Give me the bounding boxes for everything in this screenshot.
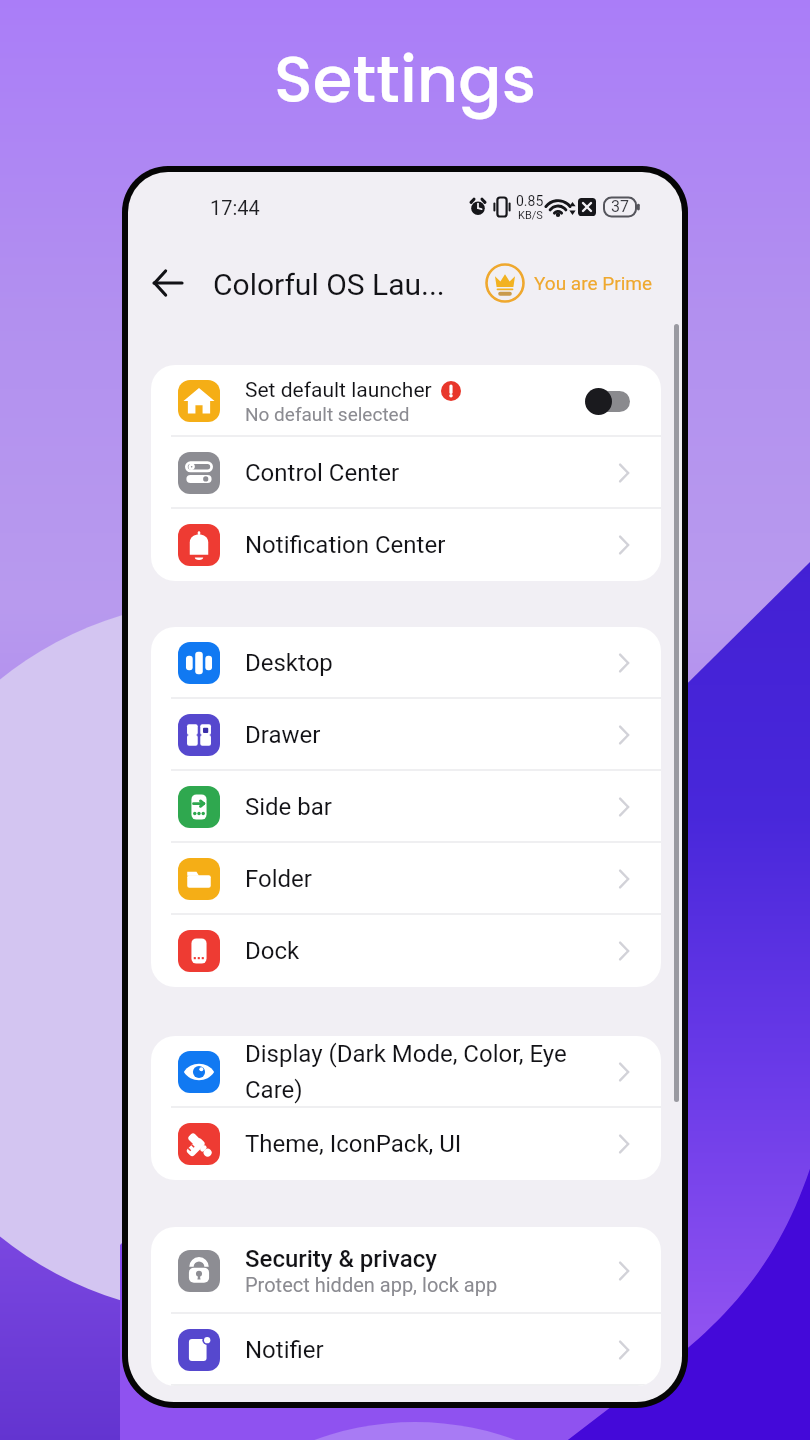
staticText: Folder	[245, 865, 312, 893]
button[interactable]: Back	[142, 257, 194, 309]
staticText: 37	[611, 197, 629, 216]
staticText: Set default launcher	[245, 378, 432, 403]
button[interactable]: Security & privacy	[151, 1227, 661, 1314]
staticText: Protect hidden app, lock app	[245, 1273, 498, 1296]
staticText: Drawer	[245, 721, 321, 749]
button[interactable]: Theme, IconPack, UI	[151, 1108, 661, 1180]
staticText: 17:44	[210, 196, 260, 219]
staticText: You are Prime	[534, 272, 652, 294]
staticText: Notifier	[245, 1336, 324, 1364]
staticText: Display (Dark Mode, Color, Eye Care)	[245, 1040, 607, 1104]
staticText: Settings	[274, 35, 536, 125]
staticText: Theme, IconPack, UI	[245, 1130, 462, 1158]
staticText: No default selected	[245, 403, 410, 425]
staticText: Desktop	[245, 649, 333, 677]
staticText: Side bar	[245, 793, 332, 821]
button[interactable]: Control Center	[151, 437, 661, 509]
staticText: 0.85	[516, 193, 544, 209]
button[interactable]: Drawer	[151, 699, 661, 771]
staticText: Dock	[245, 937, 300, 965]
staticText: Security & privacy	[245, 1245, 437, 1273]
button[interactable]: Desktop	[151, 627, 661, 699]
button[interactable]: Folder	[151, 843, 661, 915]
button[interactable]: Side bar	[151, 771, 661, 843]
button[interactable]: Display (Dark Mode, Color, Eye Care)	[151, 1036, 661, 1108]
staticText: KB/S	[518, 209, 543, 222]
staticText: Control Center	[245, 459, 400, 487]
button[interactable]: Notification Center	[151, 509, 661, 581]
button[interactable]: Set default launcher toggle	[585, 387, 631, 415]
button[interactable]: Notifier	[151, 1314, 661, 1386]
button[interactable]: Set default launcher	[151, 365, 661, 437]
staticText: Colorful OS Lau...	[213, 267, 445, 302]
button[interactable]: Dock	[151, 915, 661, 987]
staticText: Notification Center	[245, 531, 446, 559]
button[interactable]: You are Prime	[483, 261, 654, 305]
